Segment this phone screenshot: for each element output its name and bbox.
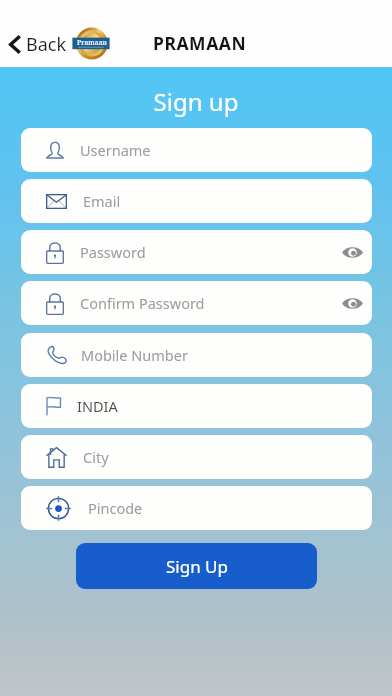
- staticText: Password: [80, 242, 146, 262]
- staticText: Pincode: [88, 498, 143, 518]
- button[interactable]: Show password: [333, 286, 372, 321]
- button[interactable]: Show password: [333, 235, 372, 270]
- button[interactable]: Sign Up: [76, 543, 317, 589]
- staticText: City: [83, 447, 109, 467]
- staticText: Mobile Number: [81, 345, 188, 365]
- button[interactable]: Confirm Password: [21, 281, 372, 325]
- staticText: Sign up: [0, 85, 392, 118]
- staticText: Email: [83, 191, 121, 211]
- staticText: Back: [26, 32, 67, 57]
- staticText: INDIA: [77, 396, 118, 416]
- button[interactable]: INDIA: [21, 384, 372, 428]
- staticText: Username: [80, 140, 151, 160]
- staticText: Sign Up: [166, 555, 228, 578]
- button[interactable]: Back: [5, 28, 71, 60]
- staticText: Confirm Password: [80, 293, 205, 313]
- button[interactable]: Email: [21, 179, 372, 223]
- staticText: Pramaan: [77, 38, 107, 47]
- button[interactable]: Password: [21, 230, 372, 274]
- button[interactable]: Username: [21, 128, 372, 172]
- button[interactable]: Mobile Number: [21, 333, 372, 377]
- staticText: PRAMAAN: [153, 31, 247, 55]
- button[interactable]: Pincode: [21, 486, 372, 530]
- button[interactable]: City: [21, 435, 372, 479]
